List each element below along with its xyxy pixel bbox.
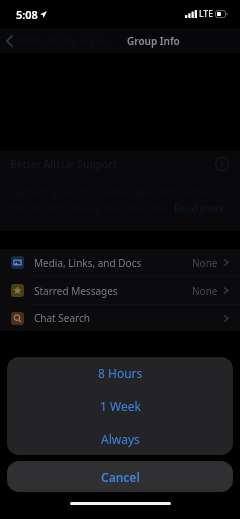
button[interactable]: Cancel <box>7 461 233 492</box>
button[interactable]: Starred Messages <box>0 277 240 304</box>
staticText: None <box>192 256 218 270</box>
staticText: Media, Links, and Docs <box>34 256 142 270</box>
button[interactable]: Info <box>215 157 229 171</box>
staticText: 1 Week <box>100 398 141 414</box>
other: Back <box>6 35 13 47</box>
button[interactable]: 1 Week <box>7 390 233 422</box>
button[interactable]: Always <box>7 423 233 455</box>
staticText: Starred Messages <box>34 284 118 298</box>
button[interactable]: Back <box>0 28 240 53</box>
staticText: 8 Hours <box>98 365 143 381</box>
staticText: Cancel <box>101 469 140 485</box>
staticText: Group Info <box>127 34 180 48</box>
staticText: Always <box>101 431 140 447</box>
button[interactable]: 8 Hours <box>7 357 233 389</box>
button[interactable]: Media, Links, and Docs <box>0 249 240 276</box>
staticText: LTE <box>199 8 213 20</box>
staticText: Chat Search <box>34 311 90 325</box>
button[interactable]: Read more <box>174 201 226 215</box>
staticText: Better Allstar Support <box>10 157 117 171</box>
button[interactable]: Chat Search <box>0 305 240 331</box>
staticText: Better Allstar Suppo <box>16 34 111 48</box>
staticText: 5:08 <box>16 7 38 22</box>
staticText: None <box>192 284 218 298</box>
